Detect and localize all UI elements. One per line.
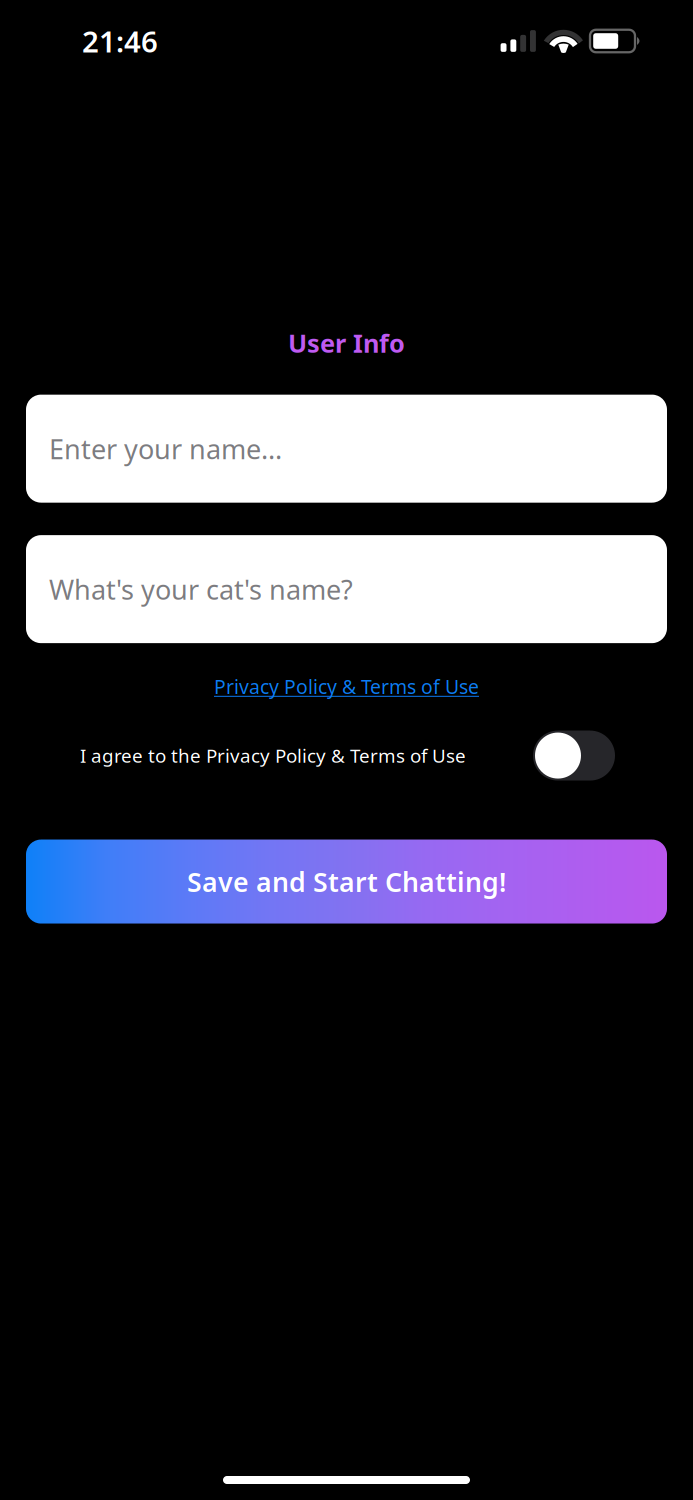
staticText: Privacy Policy & Terms of Use: [214, 673, 479, 699]
button[interactable]: What's your cat's name?: [26, 535, 667, 643]
button[interactable]: Save and Start Chatting!: [26, 840, 667, 924]
staticText: I agree to the Privacy Policy & Terms of…: [80, 743, 466, 768]
button[interactable]: Enter your name...: [26, 395, 667, 503]
button[interactable]: Privacy Policy & Terms of Use: [208, 669, 485, 703]
staticText: Save and Start Chatting!: [187, 864, 506, 899]
button[interactable]: I agree to the Privacy Policy & Terms of…: [0, 731, 693, 781]
staticText: Enter your name...: [49, 430, 282, 467]
staticText: User Info: [288, 326, 405, 360]
staticText: 21:46: [82, 21, 158, 60]
staticText: What's your cat's name?: [49, 571, 353, 608]
